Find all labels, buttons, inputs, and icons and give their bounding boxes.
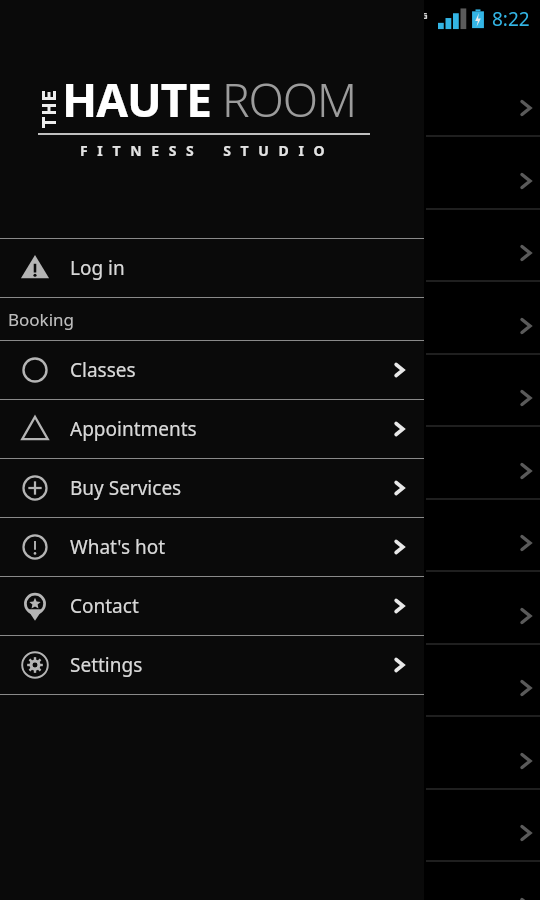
staticText: HAUTE [62, 68, 212, 131]
staticText: Log in [70, 255, 125, 281]
button[interactable]: What's hot [0, 518, 424, 576]
staticText: Settings [70, 652, 143, 678]
staticText: F I T N E S S S T U D I O [80, 141, 328, 160]
staticText: Booking [8, 308, 75, 331]
button[interactable]: Buy Services [0, 459, 424, 517]
button[interactable]: Classes [0, 341, 424, 399]
staticText: 3G [416, 9, 428, 21]
staticText: Buy Services [70, 475, 182, 501]
button[interactable]: Settings [0, 636, 424, 694]
staticText: Appointments [70, 416, 197, 442]
staticText: Classes [70, 357, 136, 383]
staticText: What's hot [70, 534, 166, 560]
button[interactable]: Appointments [0, 400, 424, 458]
button[interactable]: Contact [0, 577, 424, 635]
staticText: 8:22 [492, 6, 530, 32]
button[interactable]: Log in [0, 239, 424, 297]
staticText: ROOM [222, 68, 357, 131]
staticText: Contact [70, 593, 139, 619]
